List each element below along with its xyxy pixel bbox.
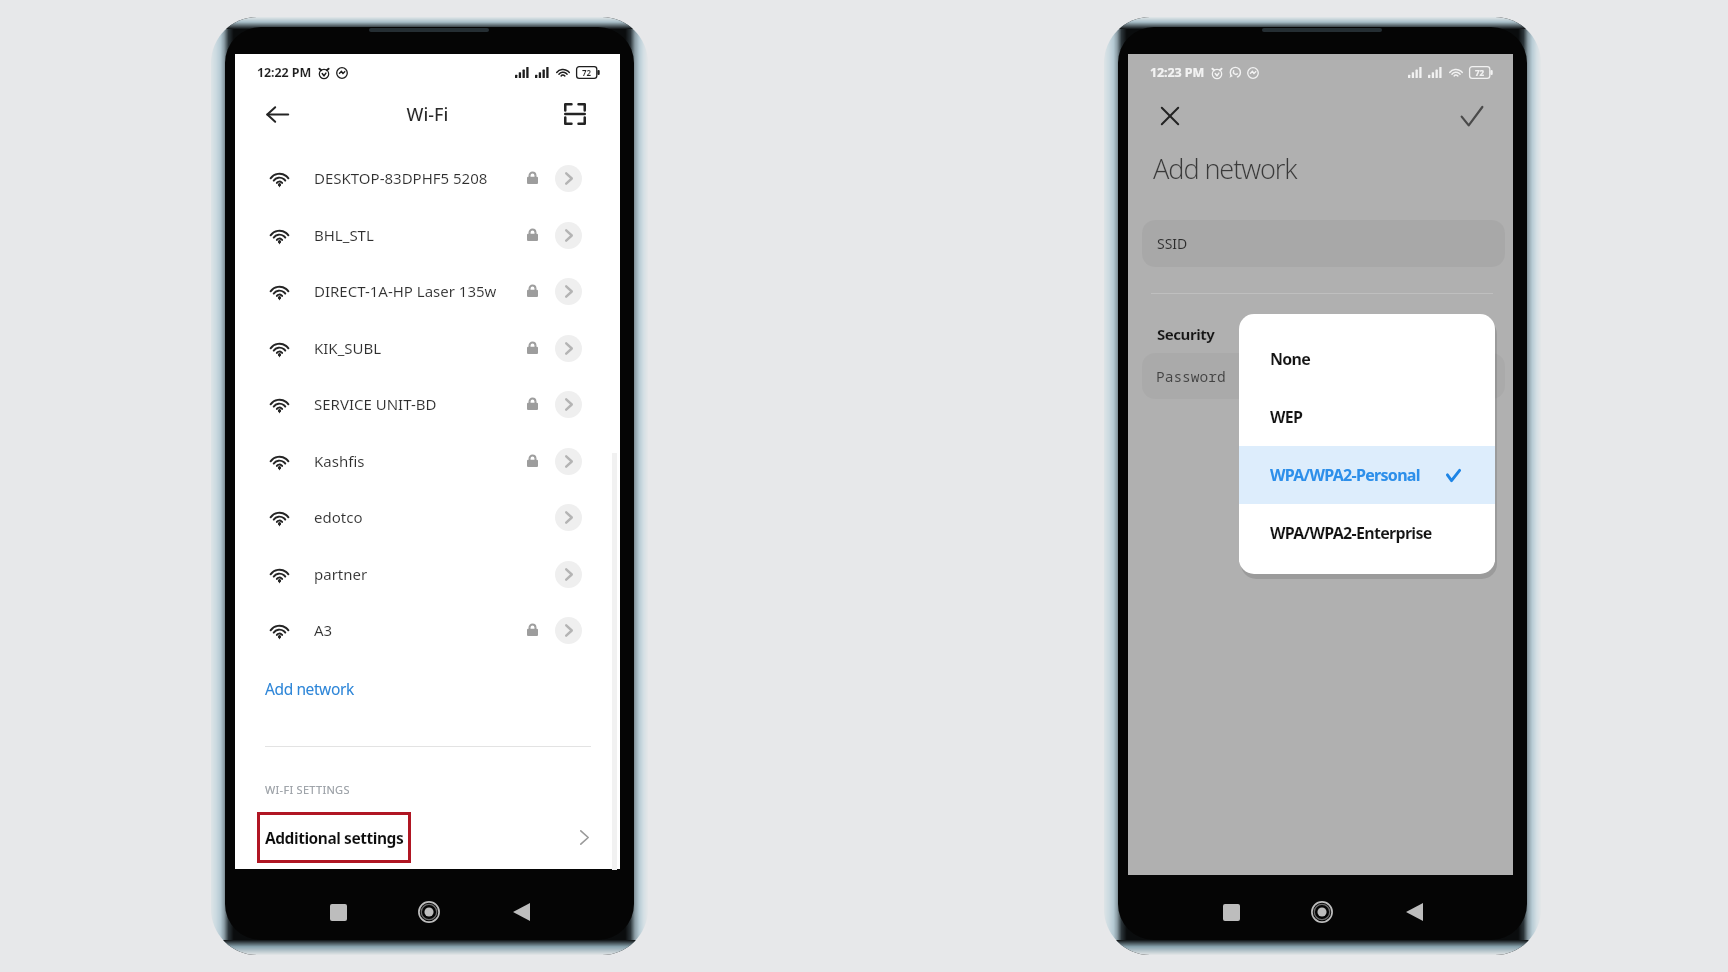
staticText: BHL_STL [314, 225, 374, 245]
button[interactable]: SSID [1142, 220, 1505, 267]
staticText: DESKTOP-83DPHF5 5208 [314, 168, 488, 188]
staticText: Password [1156, 366, 1226, 386]
button[interactable]: Kashfis [235, 433, 620, 489]
staticText: edotco [314, 507, 363, 527]
staticText: partner [314, 564, 368, 584]
button[interactable]: Back [1400, 898, 1428, 926]
button[interactable]: Save [1454, 98, 1490, 134]
button[interactable]: WPA/WPA2-Enterprise [1239, 504, 1495, 562]
button[interactable]: Network details [555, 504, 582, 531]
staticText: WPA/WPA2-Enterprise [1270, 522, 1432, 544]
button[interactable]: Network details [555, 335, 582, 362]
staticText: WEP [1270, 406, 1303, 428]
button[interactable]: Add network [235, 670, 620, 706]
button[interactable]: Network details [555, 222, 582, 249]
button[interactable]: Network details [555, 617, 582, 644]
button[interactable]: DIRECT-1A-HP Laser 135w [235, 263, 620, 319]
button[interactable]: WPA/WPA2-Personal [1239, 446, 1495, 504]
button[interactable]: SERVICE UNIT-BD [235, 376, 620, 432]
staticText: WPA/WPA2-Personal [1270, 464, 1420, 486]
button[interactable]: A3 [235, 602, 620, 658]
button[interactable]: Network details [555, 561, 582, 588]
button[interactable]: Network details [555, 165, 582, 192]
button[interactable]: Scan QR code [556, 95, 594, 133]
button[interactable]: Recents [324, 898, 352, 926]
button[interactable]: edotco [235, 489, 620, 545]
button[interactable]: Additional settings [235, 812, 620, 863]
button[interactable]: Network details [555, 391, 582, 418]
button[interactable]: DESKTOP-83DPHF5 5208 [235, 150, 620, 206]
button[interactable]: Recents [1217, 898, 1245, 926]
button[interactable]: partner [235, 546, 620, 602]
staticText: Kashfis [314, 451, 365, 471]
staticText: Add network [265, 678, 354, 699]
staticText: SERVICE UNIT-BD [314, 394, 437, 414]
staticText: WI-FI SETTINGS [265, 782, 350, 797]
staticText: Wi-Fi [235, 102, 620, 127]
staticText: 72 [1475, 67, 1485, 78]
button[interactable]: Home [415, 898, 443, 926]
button[interactable]: None [1239, 330, 1495, 388]
staticText: Additional settings [265, 827, 404, 848]
button[interactable]: Back [258, 95, 296, 133]
staticText: Add network [1153, 150, 1297, 187]
button[interactable]: Close [1152, 98, 1188, 134]
staticText: A3 [314, 620, 333, 640]
staticText: Security [1157, 324, 1215, 344]
staticText: SSID [1157, 234, 1188, 253]
button[interactable]: Network details [555, 278, 582, 305]
button[interactable]: Back [507, 898, 535, 926]
staticText: 72 [582, 67, 592, 78]
button[interactable]: KIK_SUBL [235, 320, 620, 376]
staticText: 12:23 PM [1150, 64, 1205, 81]
staticText: None [1270, 348, 1311, 370]
button[interactable]: Network details [555, 448, 582, 475]
staticText: DIRECT-1A-HP Laser 135w [314, 281, 497, 301]
staticText: KIK_SUBL [314, 338, 382, 358]
button[interactable]: WEP [1239, 388, 1495, 446]
button[interactable]: Home [1308, 898, 1336, 926]
staticText: 12:22 PM [257, 64, 312, 81]
button[interactable]: BHL_STL [235, 207, 620, 263]
